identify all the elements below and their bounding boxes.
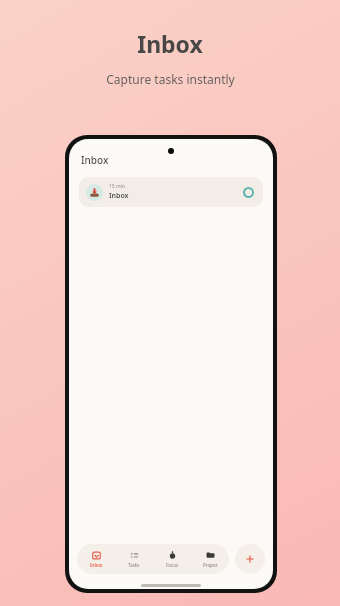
staticText: 15 min — [109, 183, 126, 190]
staticText: Inbox — [137, 28, 203, 59]
staticText: Focus — [166, 562, 179, 568]
button[interactable]: Inbox — [77, 544, 115, 574]
button[interactable]: Mark complete — [240, 184, 256, 200]
staticText: Inbox — [109, 191, 129, 201]
staticText: Tasks — [128, 562, 140, 568]
button[interactable]: Tasks — [115, 544, 153, 574]
staticText: Inbox — [81, 153, 109, 167]
staticText: Capture tasks instantly — [106, 71, 235, 87]
staticText: Inbox — [90, 562, 103, 568]
button[interactable]: Focus — [153, 544, 191, 574]
staticText: Project — [203, 562, 218, 568]
button[interactable]: 15 min — [79, 177, 263, 207]
button[interactable]: Project — [191, 544, 229, 574]
button[interactable]: Add task — [235, 544, 265, 574]
